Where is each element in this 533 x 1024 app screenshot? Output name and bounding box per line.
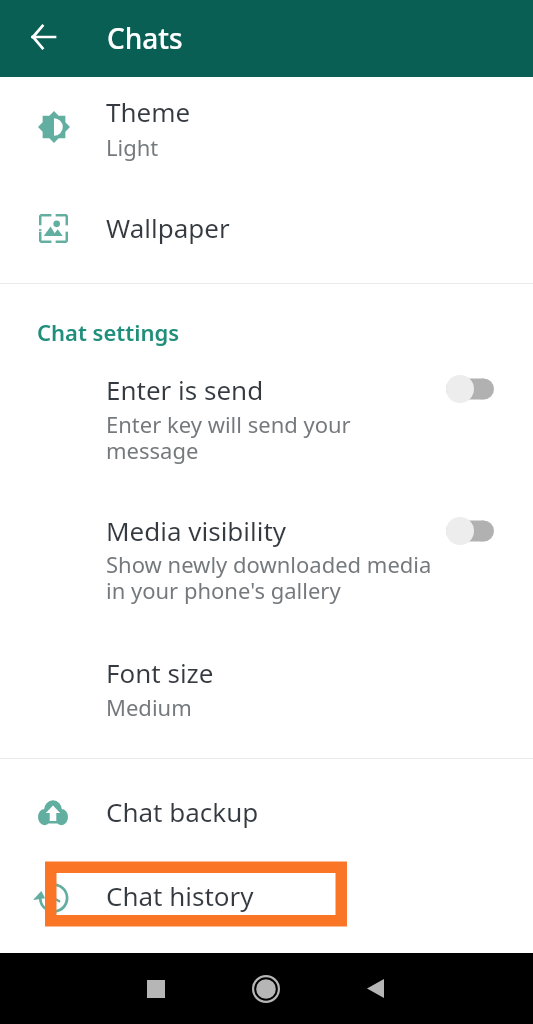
button[interactable]: Recent apps	[133, 966, 178, 1011]
staticText: Chat settings	[37, 317, 180, 347]
button[interactable]: Back	[353, 966, 398, 1011]
staticText: Theme	[106, 94, 191, 129]
staticText: Font size	[106, 655, 214, 690]
staticText: Enter key will send your message	[106, 409, 351, 466]
staticText: Chats	[107, 19, 183, 57]
button[interactable]: Enter is send	[0, 364, 533, 474]
button[interactable]: Navigate up	[17, 11, 69, 63]
staticText: Medium	[106, 692, 192, 722]
button[interactable]: Media visibility toggle, off	[438, 517, 494, 545]
button[interactable]: Chat history	[0, 859, 533, 931]
button[interactable]: Font size	[0, 648, 533, 732]
button[interactable]: Home	[243, 966, 288, 1011]
staticText: Chat history	[106, 878, 254, 913]
button[interactable]: Media visibility	[0, 506, 533, 618]
button[interactable]: Theme	[0, 88, 533, 176]
staticText: Show newly downloaded media in your phon…	[106, 549, 432, 606]
button[interactable]: Enter is send toggle, off	[438, 375, 494, 403]
button[interactable]: Chat backup	[0, 778, 533, 850]
staticText: Enter is send	[106, 372, 264, 407]
staticText: Wallpaper	[106, 210, 230, 245]
staticText: Media visibility	[106, 513, 287, 548]
staticText: Light	[106, 132, 159, 162]
staticText: Chat backup	[106, 794, 259, 829]
button[interactable]: Wallpaper	[0, 190, 533, 270]
